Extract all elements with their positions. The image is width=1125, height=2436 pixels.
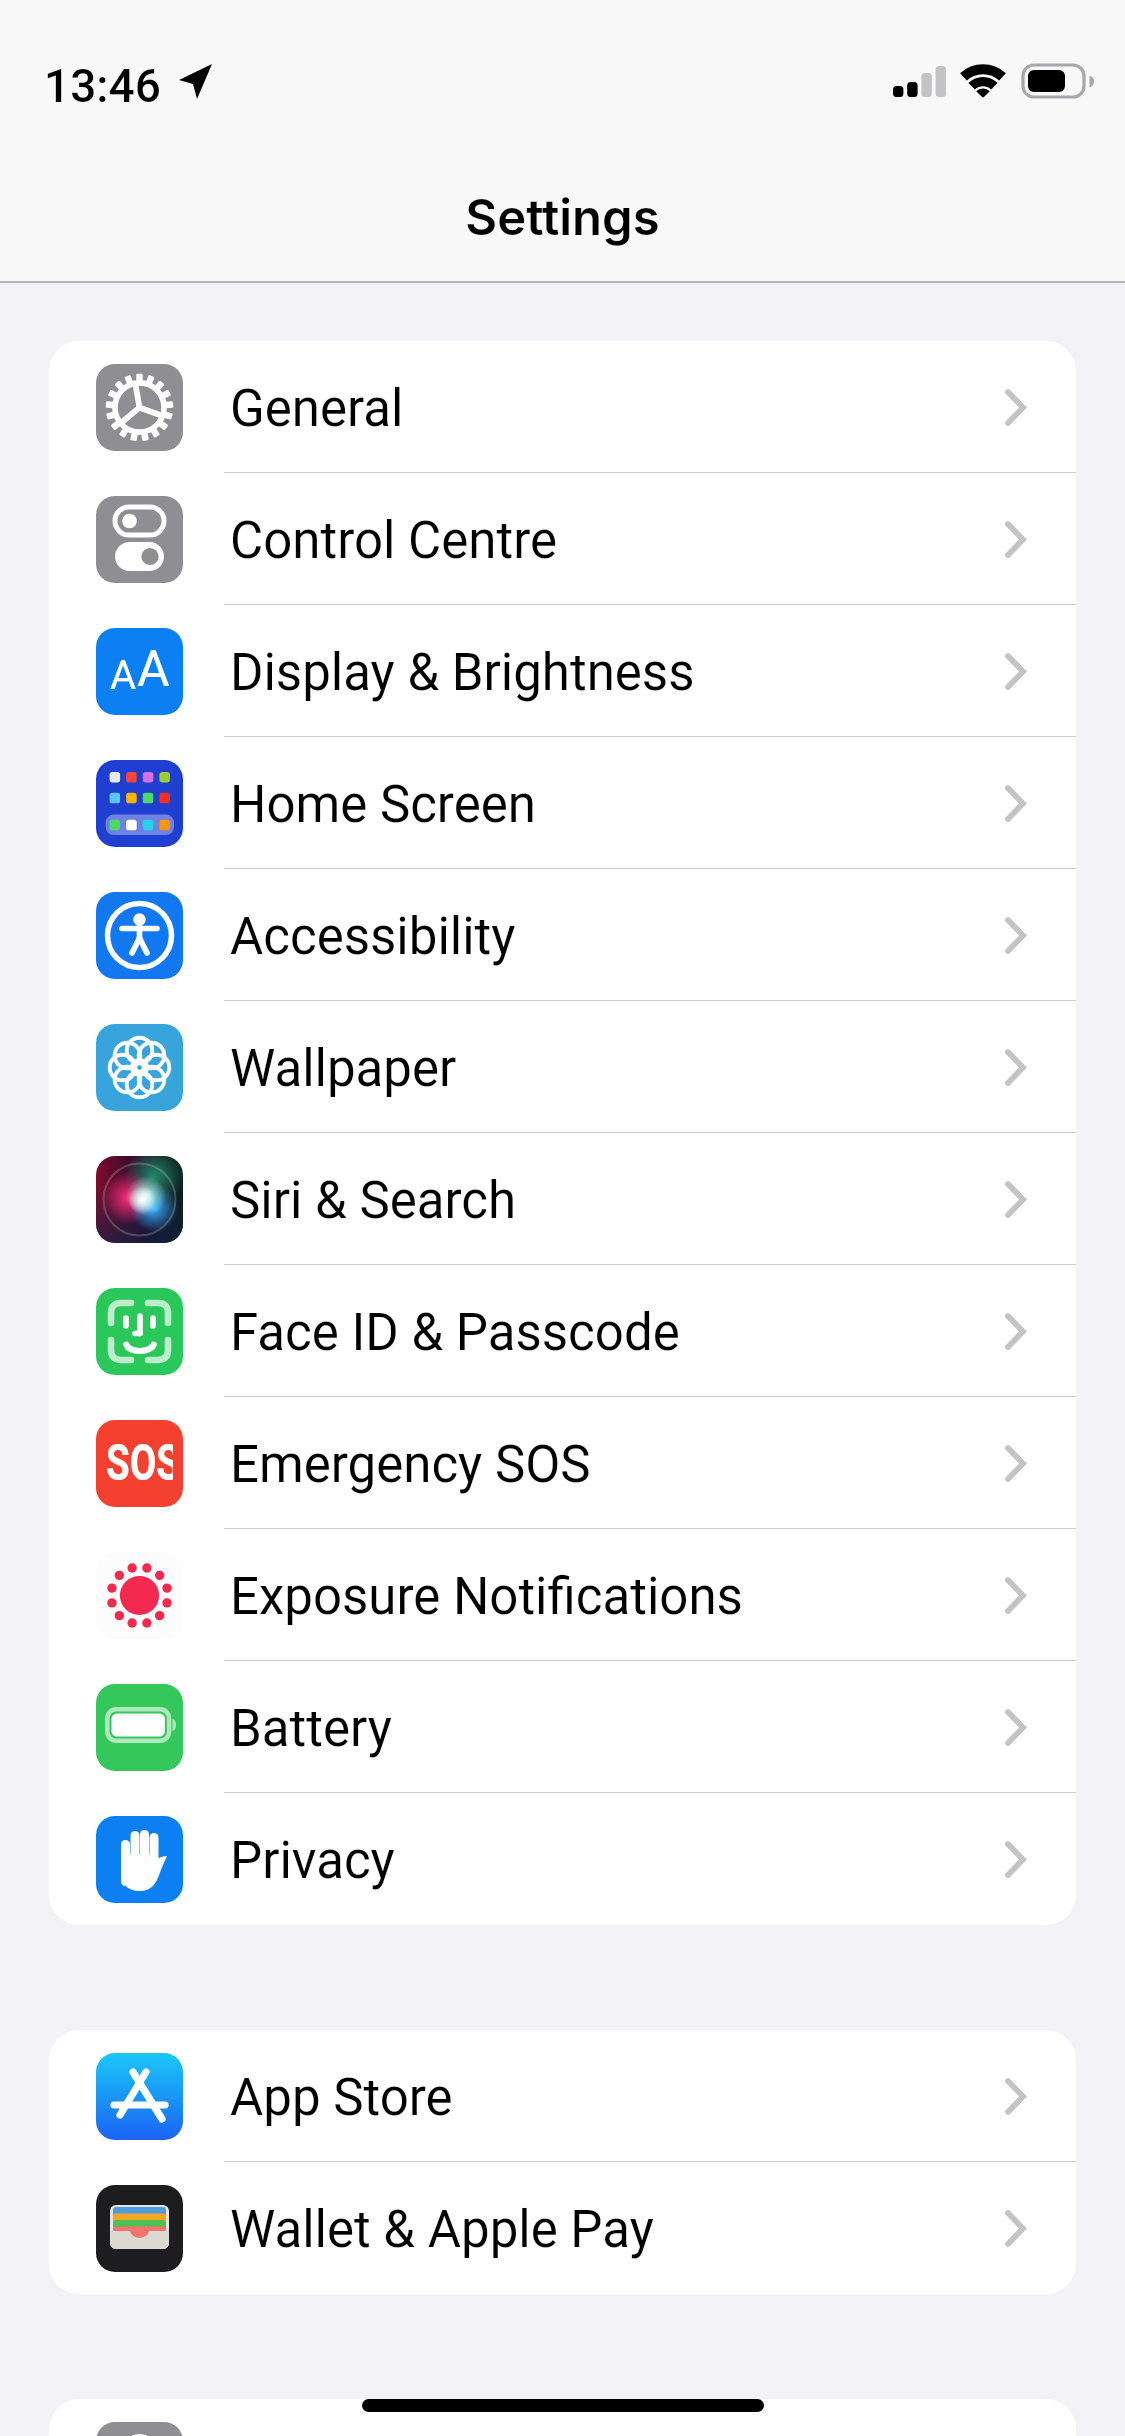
button[interactable]: Siri & Search — [49, 1133, 1076, 1265]
staticText: Wallpaper — [230, 1039, 457, 1099]
staticText: Wallet & Apple Pay — [230, 2200, 654, 2260]
staticText: 13:46 — [44, 59, 161, 113]
button[interactable]: Accessibility — [49, 869, 1076, 1001]
button[interactable]: Home Screen — [49, 737, 1076, 869]
staticText: A — [137, 640, 170, 699]
staticText: Exposure Notifications — [230, 1567, 743, 1627]
button[interactable]: App Store — [49, 2030, 1076, 2162]
staticText: Accessibility — [230, 907, 516, 967]
staticText: A — [110, 652, 137, 699]
staticText: Settings — [465, 188, 660, 247]
staticText: General — [230, 379, 404, 439]
button[interactable]: Face ID & Passcode — [49, 1265, 1076, 1397]
button[interactable]: General — [49, 341, 1076, 473]
button[interactable]: Exposure Notifications — [49, 1529, 1076, 1661]
staticText: Siri & Search — [230, 1171, 517, 1231]
button[interactable]: SOS — [49, 1397, 1076, 1529]
staticText: Home Screen — [230, 775, 536, 835]
button[interactable]: Wallet & Apple Pay — [49, 2162, 1076, 2294]
staticText: Control Centre — [230, 511, 557, 571]
staticText: Emergency SOS — [230, 1435, 591, 1495]
staticText: App Store — [230, 2068, 453, 2128]
button[interactable]: Passwords — [49, 2399, 1076, 2436]
staticText: Battery — [230, 1699, 392, 1759]
staticText: Display & Brightness — [230, 643, 695, 703]
button[interactable]: Control Centre — [49, 473, 1076, 605]
button[interactable]: Privacy — [49, 1793, 1076, 1925]
button[interactable]: Wallpaper — [49, 1001, 1076, 1133]
staticText: SOS — [106, 1434, 173, 1493]
button[interactable]: Battery — [49, 1661, 1076, 1793]
staticText: Face ID & Passcode — [230, 1303, 680, 1363]
staticText: Privacy — [230, 1831, 395, 1891]
button[interactable]: A — [49, 605, 1076, 737]
